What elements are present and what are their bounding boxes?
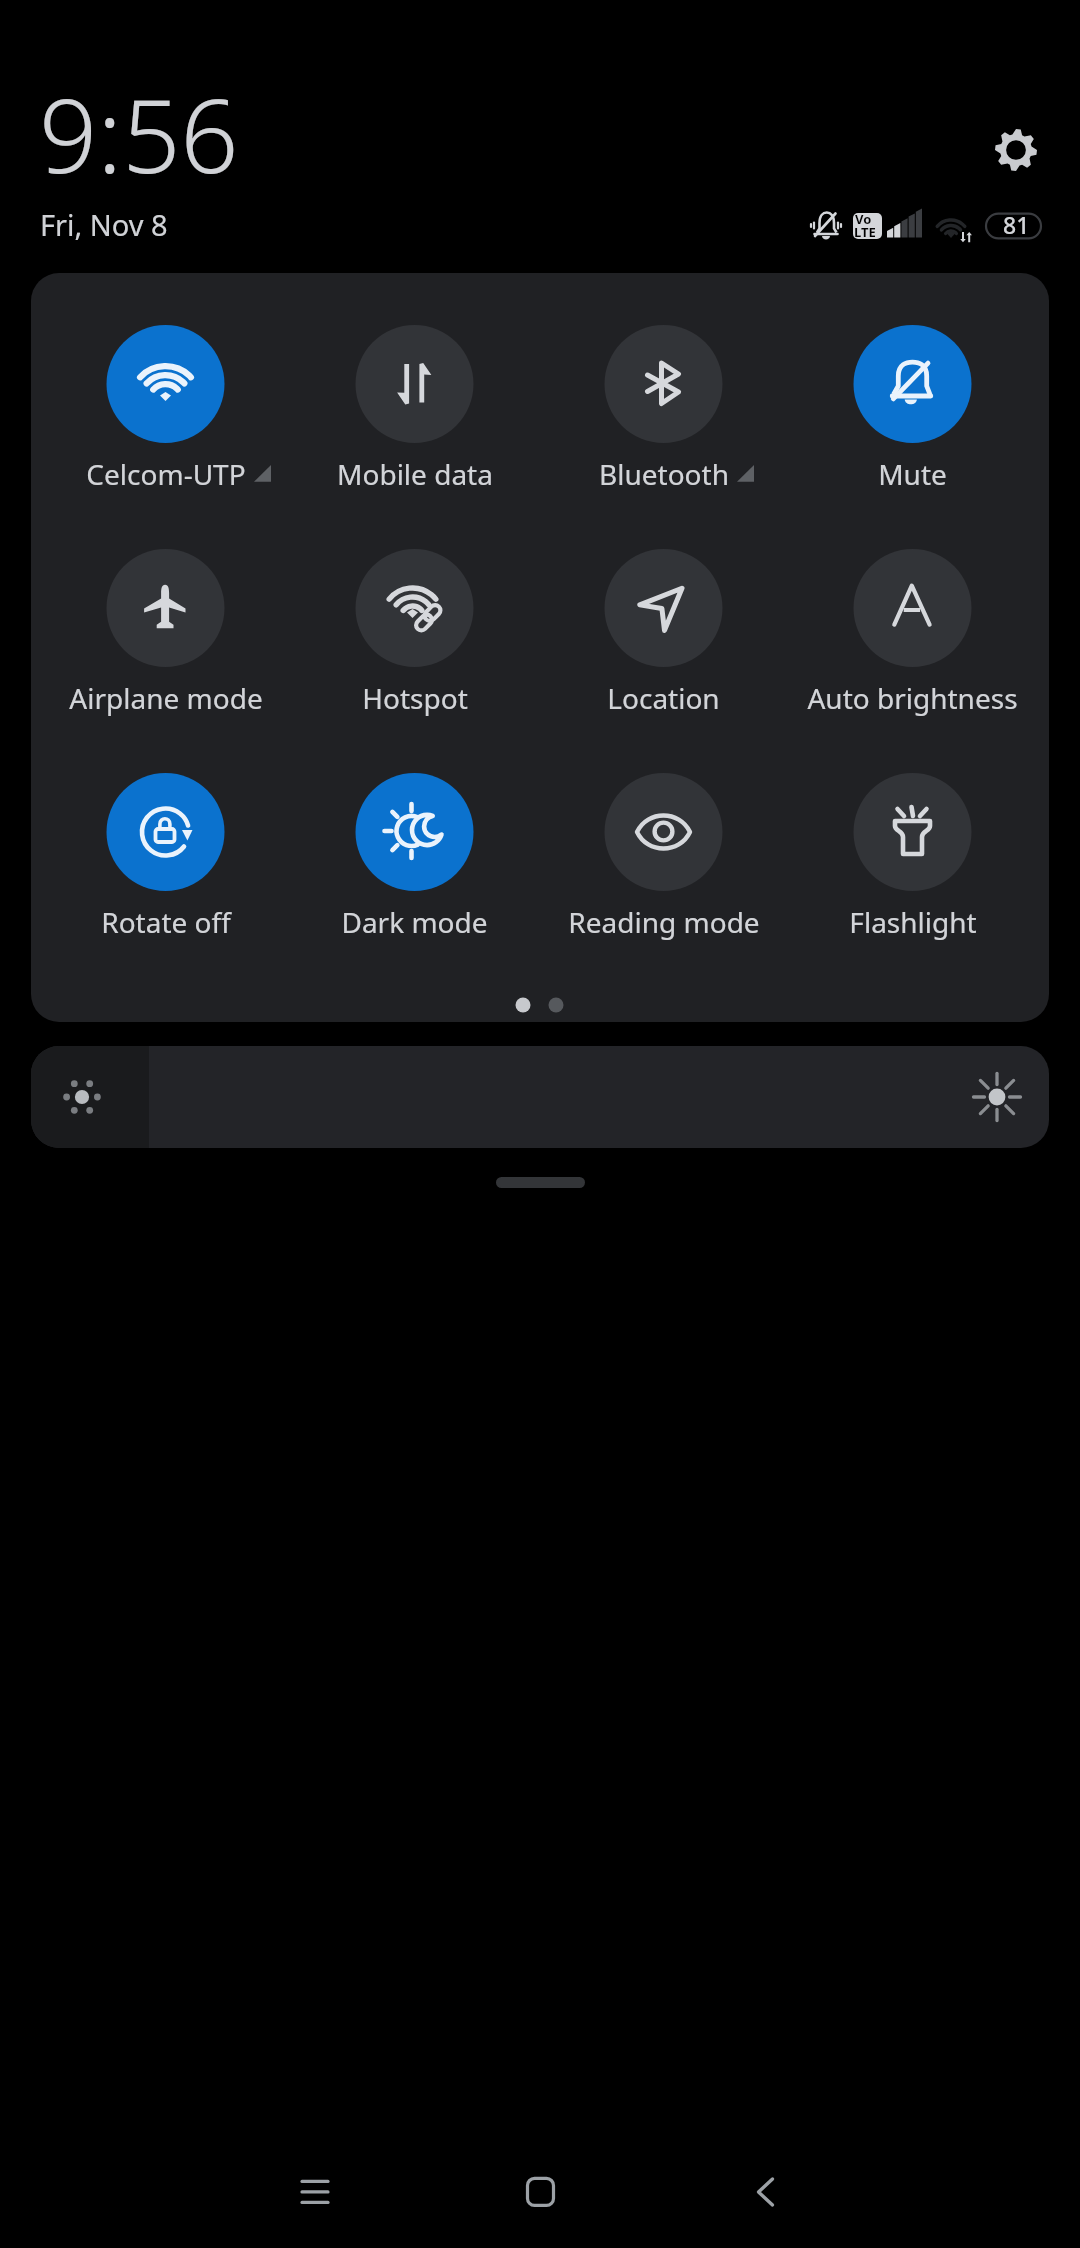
staticText: Mobile data (337, 455, 493, 493)
button[interactable]: Auto brightness (788, 546, 1037, 718)
staticText: Flashlight (849, 903, 977, 941)
button[interactable]: Location (539, 546, 788, 718)
button[interactable]: Recents (202, 2130, 428, 2248)
button[interactable]: Celcom-UTP (41, 322, 290, 494)
button[interactable]: Mute (788, 322, 1037, 494)
button[interactable]: Flashlight (788, 770, 1037, 942)
button[interactable]: Dark mode (290, 770, 539, 942)
staticText: 81 (1003, 209, 1030, 240)
button[interactable]: Reading mode (539, 770, 788, 942)
staticText: Celcom-UTP (86, 455, 246, 493)
button[interactable]: Airplane mode (41, 546, 290, 718)
button[interactable]: Back (653, 2130, 878, 2248)
button[interactable]: 9:56 (39, 64, 339, 247)
staticText: Vo (855, 210, 872, 228)
staticText: Dark mode (341, 903, 488, 941)
staticText: Fri, Nov 8 (40, 205, 168, 244)
staticText: Location (607, 679, 720, 717)
staticText: Hotspot (362, 679, 468, 717)
staticText: Bluetooth (599, 455, 729, 493)
staticText: Reading mode (568, 903, 760, 941)
staticText: 9:56 (39, 64, 239, 203)
button[interactable]: Mobile data (290, 322, 539, 494)
staticText: Rotate off (101, 903, 231, 941)
button[interactable]: Home (428, 2130, 653, 2248)
button[interactable]: Hotspot (290, 546, 539, 718)
staticText: Auto brightness (807, 679, 1018, 717)
staticText: Airplane mode (69, 679, 263, 717)
button[interactable]: Rotate off (41, 770, 290, 942)
button[interactable]: Settings (976, 110, 1056, 190)
button[interactable]: Bluetooth (539, 322, 788, 494)
staticText: Mute (878, 455, 947, 493)
staticText: LTE (854, 223, 876, 241)
button[interactable]: Brightness (31, 1046, 1049, 1148)
button[interactable]: Collapse panel (496, 1177, 585, 1188)
